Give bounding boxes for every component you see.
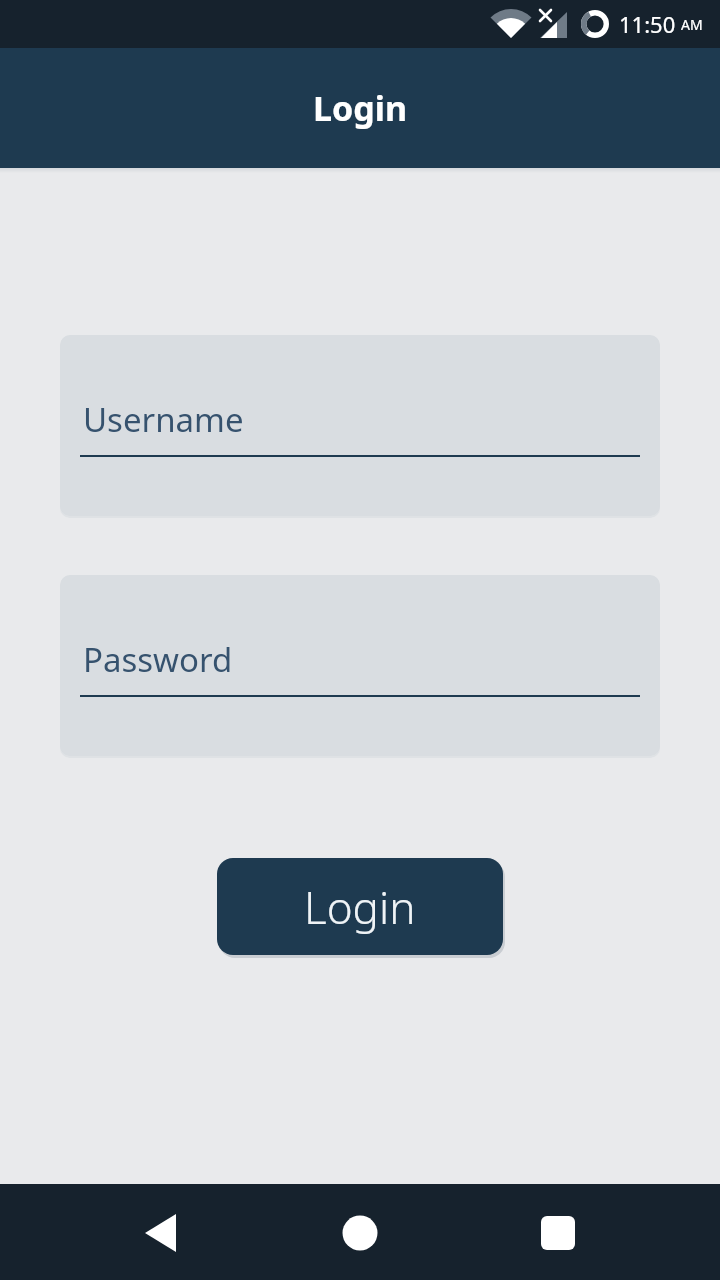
staticText: 11:50 (619, 9, 676, 39)
staticText: Login (304, 877, 416, 937)
button[interactable] (520, 1192, 600, 1272)
staticText: Login (313, 85, 408, 131)
button[interactable] (320, 1192, 400, 1272)
button[interactable]: Username (60, 335, 660, 516)
button[interactable]: Login (217, 858, 503, 955)
button[interactable]: Password (60, 575, 660, 756)
staticText: Password (83, 637, 233, 682)
button[interactable] (120, 1192, 200, 1272)
staticText: AM (681, 15, 703, 34)
staticText: Username (83, 397, 244, 442)
